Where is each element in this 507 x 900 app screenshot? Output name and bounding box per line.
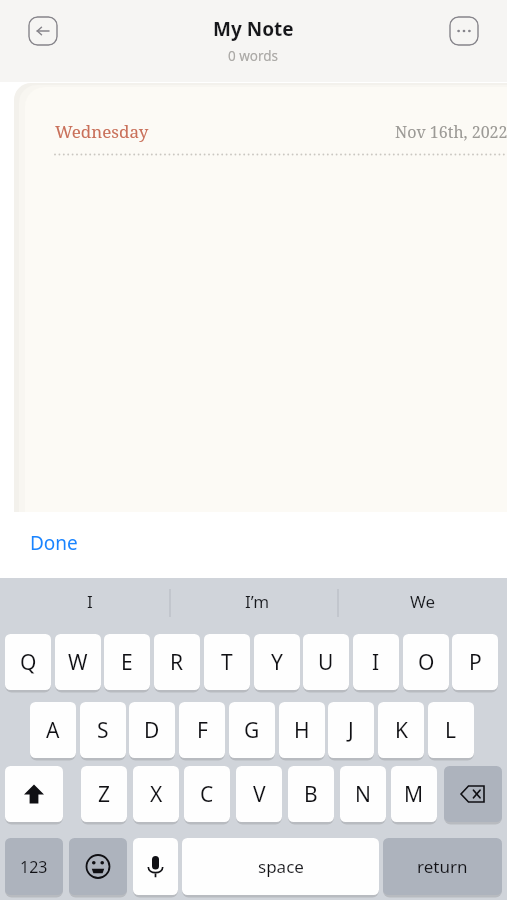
staticText: T bbox=[221, 648, 233, 677]
staticText: I bbox=[372, 648, 380, 677]
button[interactable]: I bbox=[353, 634, 399, 690]
staticText: V bbox=[253, 780, 266, 809]
staticText: Q bbox=[20, 648, 37, 677]
button[interactable]: P bbox=[452, 634, 498, 690]
staticText: Done bbox=[30, 530, 78, 556]
button[interactable]: U bbox=[303, 634, 349, 690]
button[interactable]: Z bbox=[81, 766, 127, 822]
button[interactable]: Dictate bbox=[133, 838, 178, 895]
staticText: Wednesday bbox=[55, 120, 149, 143]
staticText: Nov 16th, 2022 bbox=[395, 121, 507, 143]
button[interactable]: H bbox=[279, 702, 325, 758]
staticText: Z bbox=[98, 780, 111, 809]
button[interactable]: G bbox=[229, 702, 275, 758]
button[interactable]: More options bbox=[449, 16, 479, 46]
staticText: space bbox=[258, 855, 304, 878]
staticText: B bbox=[304, 780, 318, 809]
button[interactable]: D bbox=[129, 702, 175, 758]
staticText: R bbox=[170, 648, 184, 677]
button[interactable]: Shift bbox=[5, 766, 63, 822]
staticText: W bbox=[68, 648, 88, 677]
staticText: F bbox=[197, 716, 208, 745]
staticText: K bbox=[395, 716, 408, 745]
button[interactable]: C bbox=[184, 766, 230, 822]
button[interactable]: E bbox=[104, 634, 150, 690]
button[interactable]: return bbox=[383, 838, 502, 895]
button[interactable]: Back bbox=[28, 16, 58, 46]
staticText: X bbox=[150, 780, 163, 809]
button[interactable]: J bbox=[328, 702, 374, 758]
staticText: O bbox=[418, 648, 435, 677]
staticText: I bbox=[87, 590, 93, 613]
button[interactable]: Emoji bbox=[69, 838, 127, 895]
button[interactable]: M bbox=[391, 766, 437, 822]
button[interactable]: X bbox=[133, 766, 179, 822]
staticText: M bbox=[404, 780, 424, 809]
button[interactable]: O bbox=[403, 634, 449, 690]
button[interactable]: F bbox=[179, 702, 225, 758]
staticText: E bbox=[121, 648, 133, 677]
button[interactable]: Y bbox=[254, 634, 300, 690]
button[interactable]: Wednesday bbox=[25, 87, 507, 512]
button[interactable]: Done bbox=[30, 530, 78, 556]
staticText: U bbox=[318, 648, 334, 677]
staticText: We bbox=[410, 590, 436, 613]
staticText: 0 words bbox=[228, 47, 279, 65]
staticText: J bbox=[348, 716, 354, 745]
staticText: L bbox=[445, 716, 457, 745]
button[interactable]: L bbox=[428, 702, 474, 758]
staticText: C bbox=[200, 780, 214, 809]
button[interactable]: We bbox=[340, 578, 506, 625]
button[interactable]: B bbox=[288, 766, 334, 822]
button[interactable]: I bbox=[7, 578, 173, 625]
button[interactable]: space bbox=[182, 838, 379, 895]
staticText: I’m bbox=[245, 590, 270, 613]
button[interactable]: I’m bbox=[174, 578, 340, 625]
staticText: 123 bbox=[20, 856, 48, 878]
button[interactable]: Backspace bbox=[444, 766, 502, 822]
button[interactable]: Q bbox=[5, 634, 51, 690]
button[interactable]: N bbox=[340, 766, 386, 822]
button[interactable]: T bbox=[204, 634, 250, 690]
staticText: H bbox=[294, 716, 310, 745]
button[interactable]: 123 bbox=[5, 838, 63, 895]
button[interactable]: A bbox=[30, 702, 76, 758]
staticText: Y bbox=[271, 648, 283, 677]
staticText: return bbox=[417, 855, 468, 878]
staticText: My Note bbox=[213, 16, 294, 42]
button[interactable]: K bbox=[378, 702, 424, 758]
button[interactable]: W bbox=[55, 634, 101, 690]
staticText: D bbox=[144, 716, 160, 745]
button[interactable]: S bbox=[80, 702, 126, 758]
staticText: P bbox=[469, 648, 482, 677]
button[interactable]: R bbox=[154, 634, 200, 690]
staticText: S bbox=[97, 716, 109, 745]
staticText: A bbox=[46, 716, 60, 745]
staticText: N bbox=[355, 780, 371, 809]
staticText: G bbox=[244, 716, 260, 745]
button[interactable]: V bbox=[236, 766, 282, 822]
